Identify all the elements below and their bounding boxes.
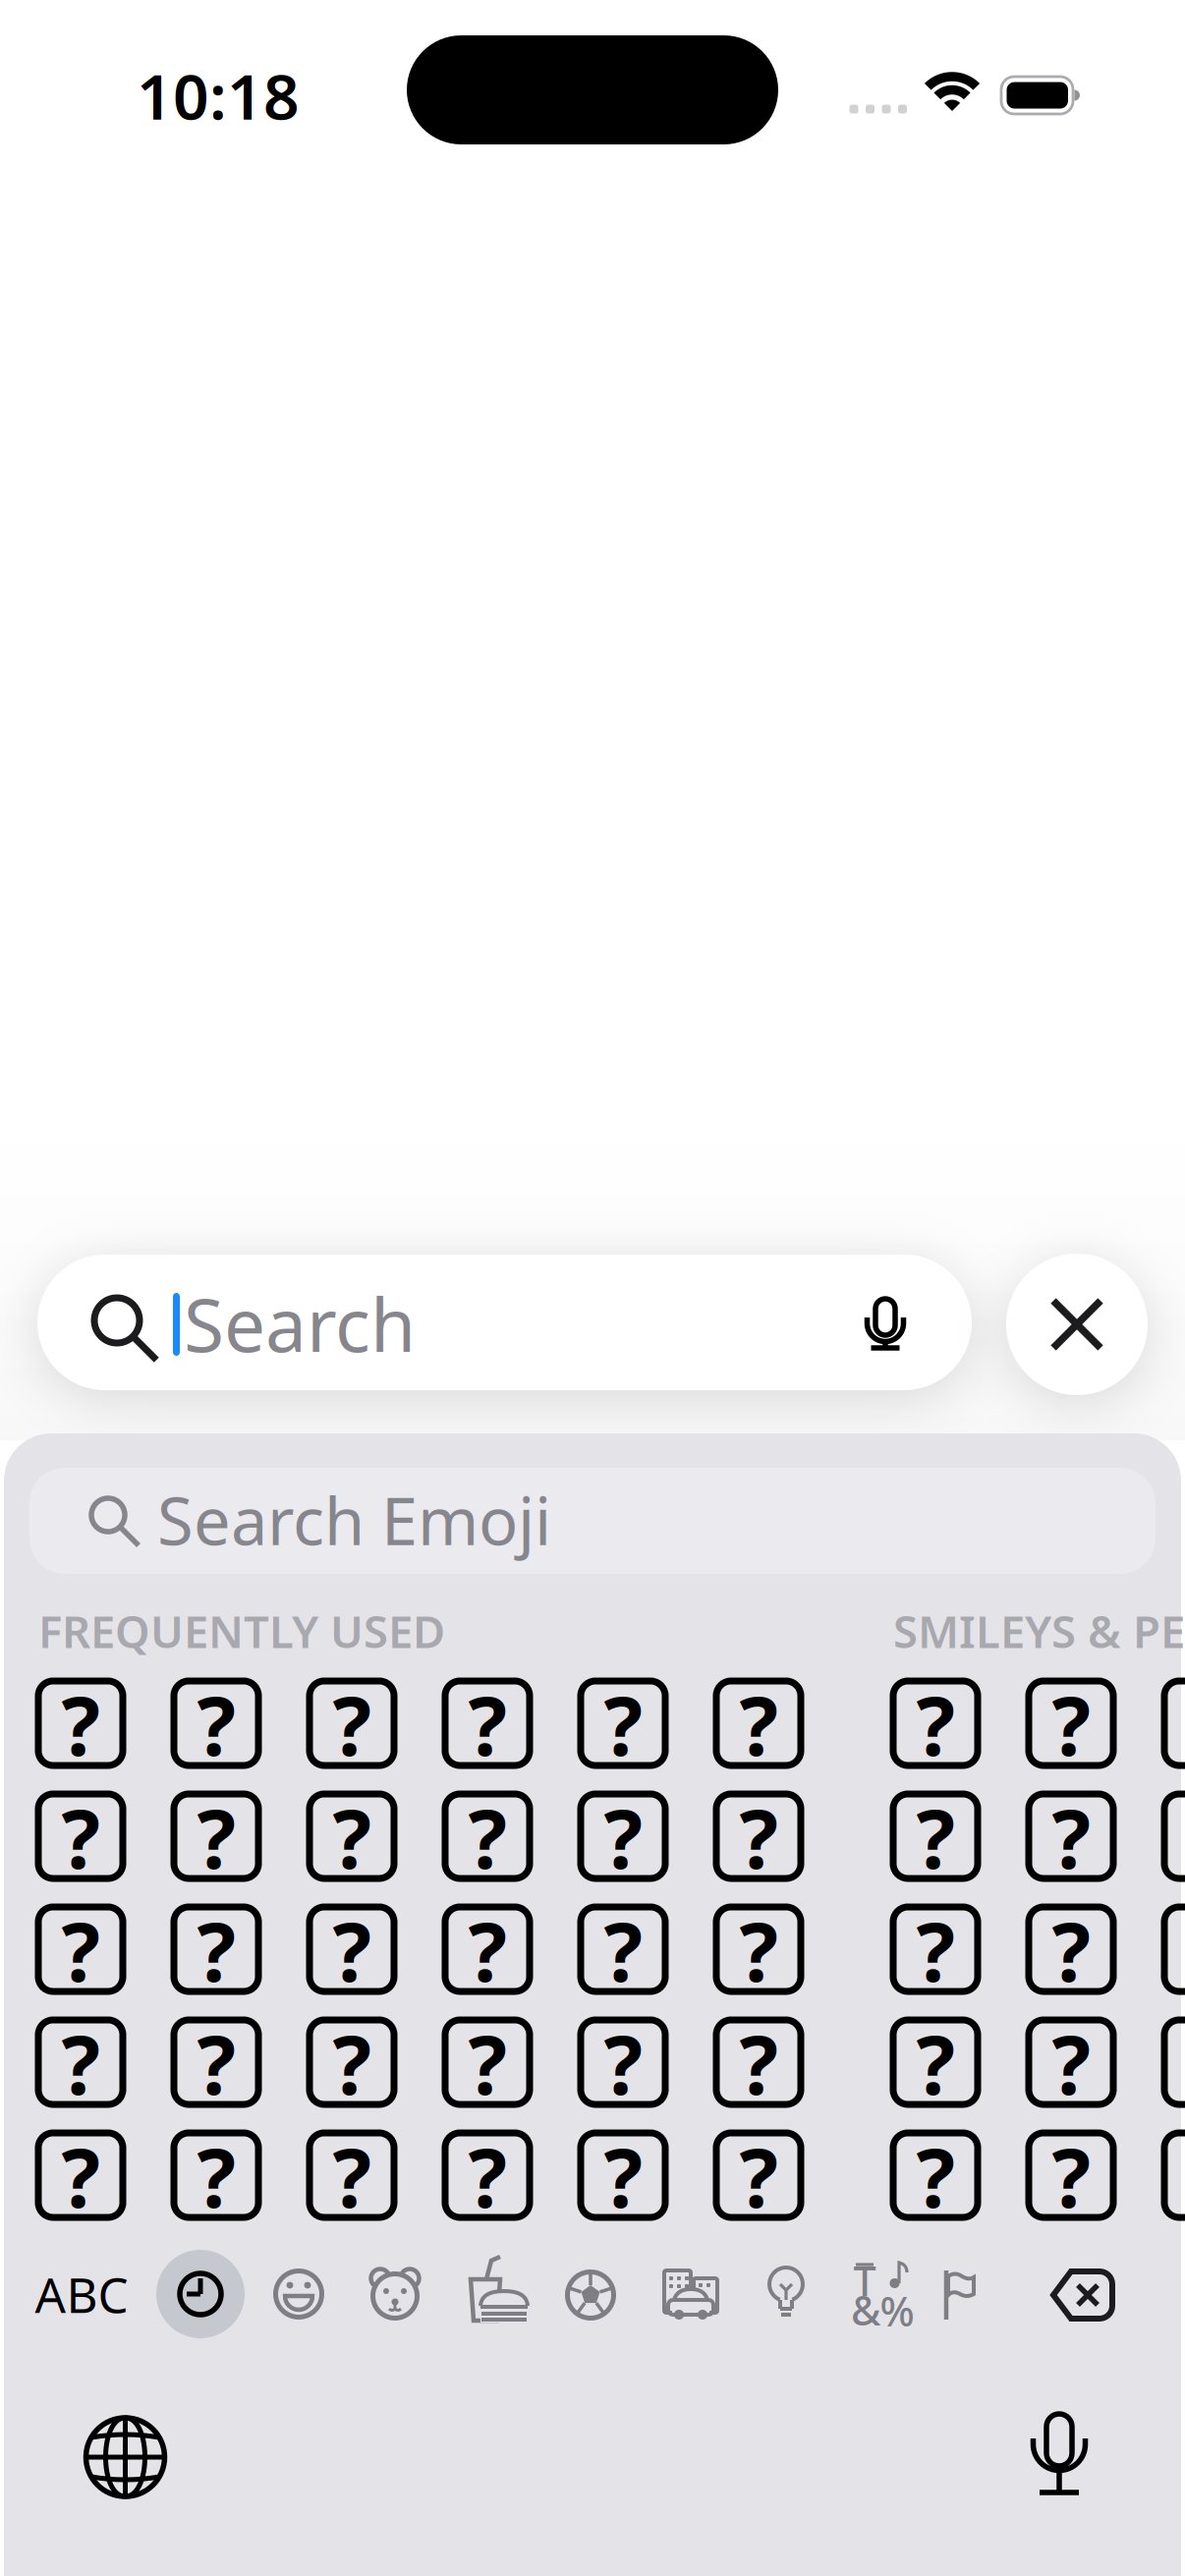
staticText: ?	[739, 1670, 778, 1778]
staticText: ?	[916, 1896, 955, 2004]
staticText: ?	[916, 1670, 955, 1778]
staticText: ?	[1052, 2009, 1090, 2117]
staticText: ?	[333, 1896, 371, 2004]
staticText: ?	[197, 1670, 235, 1778]
staticText: ?	[61, 2009, 100, 2117]
staticText: ?	[61, 1670, 100, 1778]
staticText: ?	[333, 1783, 371, 1891]
staticText: ?	[468, 2009, 507, 2117]
staticText: &	[851, 2283, 880, 2337]
staticText: ?	[333, 2009, 371, 2117]
staticText: ?	[604, 2009, 642, 2117]
staticText: ?	[197, 1783, 235, 1891]
staticText: ?	[333, 2122, 371, 2230]
staticText: ?	[916, 2122, 955, 2230]
staticText: %	[880, 2284, 914, 2338]
staticText: ABC	[35, 2262, 128, 2326]
staticText: ?	[916, 1783, 955, 1891]
staticText: ?	[197, 2009, 235, 2117]
staticText: ?	[739, 2122, 778, 2230]
staticText: ?	[61, 2122, 100, 2230]
staticText: ?	[197, 1896, 235, 2004]
staticText: ?	[333, 1670, 371, 1778]
staticText: ?	[1052, 1896, 1090, 2004]
staticText: ?	[604, 1896, 642, 2004]
staticText: ?	[468, 1783, 507, 1891]
staticText: Search Emoji	[157, 1476, 551, 1563]
staticText: ?	[604, 2122, 642, 2230]
staticText: SMILEYS & PEOPLE	[893, 1601, 1185, 1660]
staticText: FREQUENTLY USED	[38, 1601, 445, 1660]
staticText: Search	[184, 1275, 416, 1372]
staticText: ?	[604, 1670, 642, 1778]
staticText: ?	[604, 1783, 642, 1891]
staticText: ?	[468, 1670, 507, 1778]
staticText: ?	[468, 1896, 507, 2004]
staticText: ?	[916, 2009, 955, 2117]
staticText: ?	[61, 1783, 100, 1891]
staticText: ?	[739, 2009, 778, 2117]
staticText: T	[853, 2253, 876, 2307]
staticText: ?	[61, 1896, 100, 2004]
staticText: ?	[1052, 1783, 1090, 1891]
staticText: ?	[197, 2122, 235, 2230]
staticText: ?	[1052, 1670, 1090, 1778]
staticText: ?	[468, 2122, 507, 2230]
staticText: ?	[739, 1896, 778, 2004]
staticText: ?	[1052, 2122, 1090, 2230]
staticText: 10:18	[137, 54, 300, 137]
staticText: ?	[739, 1783, 778, 1891]
